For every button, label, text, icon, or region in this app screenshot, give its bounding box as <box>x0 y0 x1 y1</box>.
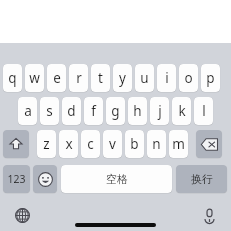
staticText: u <box>140 69 149 87</box>
button[interactable]: Emoji <box>33 165 57 193</box>
button[interactable]: y <box>113 64 132 92</box>
staticText: s <box>46 102 53 120</box>
button[interactable]: i <box>157 64 176 92</box>
staticText: d <box>67 102 76 120</box>
button[interactable]: j <box>150 97 169 125</box>
staticText: b <box>130 135 139 153</box>
button[interactable]: h <box>128 97 147 125</box>
button[interactable]: v <box>103 130 122 158</box>
button[interactable]: n <box>147 130 166 158</box>
button[interactable]: c <box>81 130 100 158</box>
button[interactable]: z <box>37 130 56 158</box>
staticText: k <box>178 102 186 120</box>
button[interactable]: k <box>172 97 191 125</box>
staticText: v <box>109 135 116 153</box>
button[interactable]: Voice input <box>202 208 217 223</box>
button[interactable]: l <box>194 97 213 125</box>
button[interactable]: d <box>62 97 81 125</box>
staticText: i <box>165 69 169 87</box>
staticText: n <box>152 135 161 153</box>
button[interactable]: m <box>169 130 188 158</box>
staticText: r <box>76 69 82 87</box>
button[interactable]: x <box>59 130 78 158</box>
button[interactable]: r <box>69 64 88 92</box>
button[interactable]: f <box>84 97 103 125</box>
staticText: y <box>119 69 126 87</box>
button[interactable]: o <box>179 64 198 92</box>
staticText: o <box>184 69 193 87</box>
button[interactable]: Backspace <box>196 130 222 158</box>
staticText: q <box>8 69 17 87</box>
staticText: w <box>29 69 40 87</box>
button[interactable]: 换行 <box>176 165 227 193</box>
button[interactable]: Shift <box>3 130 29 158</box>
button[interactable]: u <box>135 64 154 92</box>
staticText: a <box>24 102 32 120</box>
staticText: 空格 <box>106 172 128 186</box>
staticText: x <box>65 135 73 153</box>
button[interactable]: g <box>106 97 125 125</box>
button[interactable]: w <box>25 64 44 92</box>
staticText: e <box>53 69 61 87</box>
staticText: m <box>172 135 185 153</box>
staticText: l <box>202 102 206 120</box>
staticText: j <box>158 102 162 120</box>
button[interactable]: t <box>91 64 110 92</box>
staticText: t <box>98 69 103 87</box>
staticText: g <box>111 102 120 120</box>
button[interactable]: e <box>47 64 66 92</box>
staticText: 123 <box>7 172 26 186</box>
button[interactable]: b <box>125 130 144 158</box>
button[interactable]: 空格 <box>61 165 172 193</box>
button[interactable]: s <box>40 97 59 125</box>
button[interactable]: a <box>18 97 37 125</box>
button[interactable]: Numbers <box>3 165 30 193</box>
staticText: 换行 <box>191 172 213 186</box>
staticText: h <box>133 102 142 120</box>
staticText: z <box>43 135 50 153</box>
staticText: f <box>91 102 96 120</box>
button[interactable]: Switch keyboard language <box>15 208 30 223</box>
staticText: p <box>206 69 215 87</box>
staticText: c <box>87 135 94 153</box>
button[interactable]: q <box>3 64 22 92</box>
button[interactable]: p <box>201 64 220 92</box>
